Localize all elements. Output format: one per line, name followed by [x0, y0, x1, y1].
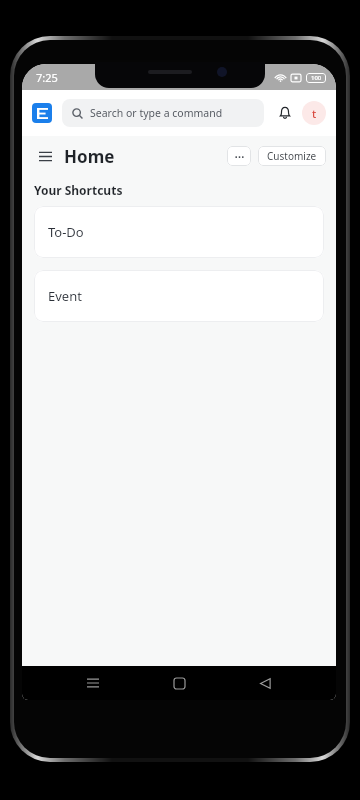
button[interactable]: Notifications: [272, 100, 298, 126]
staticText: Search or type a command: [90, 106, 223, 120]
button[interactable]: Search or type a command: [62, 99, 264, 127]
staticText: 100: [311, 74, 322, 82]
button[interactable]: Home: [164, 668, 194, 698]
button[interactable]: Customize: [258, 146, 326, 166]
staticText: Home: [64, 145, 115, 168]
staticText: t: [312, 106, 317, 121]
button[interactable]: Profile: [302, 101, 326, 125]
staticText: 7:25: [36, 70, 58, 85]
button[interactable]: Menu: [34, 145, 56, 167]
button[interactable]: To-Do: [34, 206, 324, 258]
staticText: To-Do: [48, 223, 84, 241]
staticText: Your Shortcuts: [34, 182, 123, 198]
button[interactable]: [32, 103, 52, 123]
staticText: Event: [48, 287, 82, 305]
button[interactable]: Back: [250, 668, 280, 698]
button[interactable]: Event: [34, 270, 324, 322]
staticText: Customize: [267, 149, 317, 163]
button[interactable]: More options: [227, 146, 251, 166]
button[interactable]: Recent apps: [78, 668, 108, 698]
